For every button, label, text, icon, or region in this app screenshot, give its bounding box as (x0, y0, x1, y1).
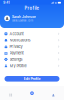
staticText: Notifications (9, 38, 30, 43)
staticText: sarah.j@email.com (12, 19, 33, 22)
button[interactable]: Notifications (0, 37, 64, 43)
button[interactable]: Profile (43, 86, 64, 100)
staticText: Privacy (9, 44, 22, 49)
staticText: Settings (9, 57, 22, 62)
staticText: Account (9, 31, 23, 36)
button[interactable]: Activity (21, 86, 43, 100)
button[interactable]: Settings (0, 56, 64, 63)
button[interactable]: Privacy (0, 43, 64, 50)
staticText: Sarah Johnson (12, 15, 36, 19)
staticText: Payment (9, 51, 23, 55)
staticText: My Profile (9, 63, 26, 68)
button[interactable]: Home (0, 86, 21, 100)
button[interactable]: Account (0, 31, 64, 37)
staticText: 9:41 (3, 1, 9, 5)
staticText: Profile (24, 5, 39, 11)
staticText: Edit Profile (23, 77, 40, 81)
button[interactable]: Payment (0, 50, 64, 56)
button[interactable]: Edit Profile (4, 76, 59, 82)
button[interactable]: My Profile (0, 63, 64, 69)
